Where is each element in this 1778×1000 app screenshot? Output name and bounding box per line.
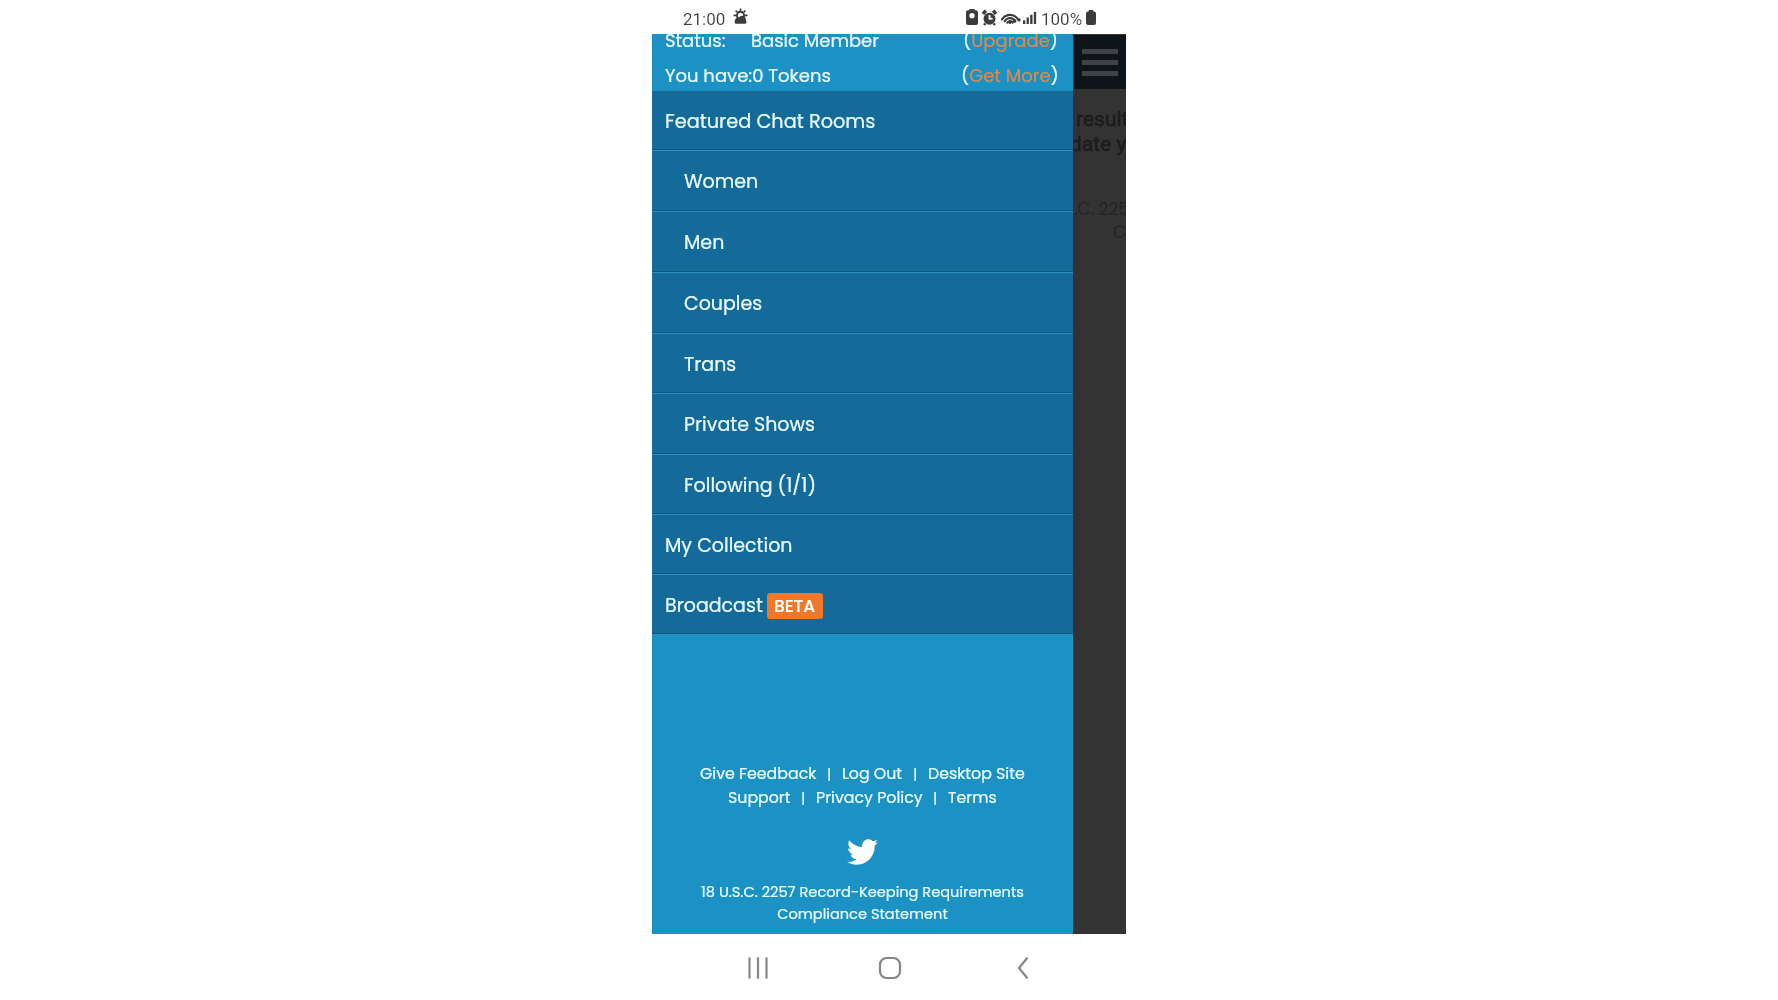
button[interactable]: (Upgrade) [963,34,1059,53]
button[interactable]: Home [860,938,920,998]
staticText: Trans [684,351,737,378]
staticText: date y [1070,132,1126,157]
staticText: Men [684,229,725,256]
button[interactable]: Couples [652,273,1073,334]
button[interactable]: My Collection [652,515,1073,575]
staticText: Women [684,168,759,195]
staticText: Privacy Policy [816,786,923,808]
staticText: 18 U.S.C. 2257 Record-Keeping Requiremen… [701,882,1024,924]
staticText: | [933,787,938,808]
staticText: Log Out [842,762,903,784]
staticText: Status: [665,34,726,53]
button[interactable]: Desktop Site [928,762,1025,784]
staticText: Couples [684,290,763,317]
staticText: C [1113,220,1126,244]
button[interactable]: Terms [948,786,997,808]
button[interactable]: Private Shows [652,394,1073,455]
button[interactable]: Trans [652,334,1073,394]
button[interactable]: Featured Chat Rooms [652,91,1073,151]
staticText: | [801,787,806,808]
staticText: Terms [948,786,997,808]
staticText: My Collection [665,532,793,559]
staticText: Give Feedback [700,762,817,784]
button[interactable]: Give Feedback [700,762,817,784]
button[interactable]: Recent apps [728,938,788,998]
staticText: (Upgrade) [963,34,1059,53]
button[interactable]: Privacy Policy [816,786,923,808]
button[interactable]: Menu [1074,35,1126,89]
staticText: You have:0 Tokens [665,63,831,88]
staticText: result [1076,107,1126,132]
button[interactable]: Women [652,151,1073,212]
button[interactable]: Following (1/1) [652,455,1073,515]
button[interactable]: Back [993,938,1053,998]
button[interactable]: Log Out [842,762,903,784]
staticText: BETA [774,594,816,618]
button[interactable]: (Get More) [961,63,1059,88]
button[interactable]: Twitter [847,839,878,865]
staticText: | [827,763,832,784]
staticText: Basic Member [751,34,879,53]
staticText: | [913,763,918,784]
staticText: 100% [1041,9,1083,29]
staticText: Desktop Site [928,762,1025,784]
button[interactable]: Men [652,212,1073,273]
staticText: 21:00 [683,9,726,29]
button[interactable]: Broadcast [652,575,1073,635]
staticText: S.C. 2257 [1064,197,1126,221]
staticText: Support [728,786,791,808]
button[interactable]: Support [728,786,791,808]
staticText: Broadcast [665,592,763,619]
staticText: Private Shows [684,411,816,438]
staticText: (Get More) [961,63,1059,88]
staticText: Following (1/1) [684,472,817,499]
staticText: Featured Chat Rooms [665,108,876,135]
